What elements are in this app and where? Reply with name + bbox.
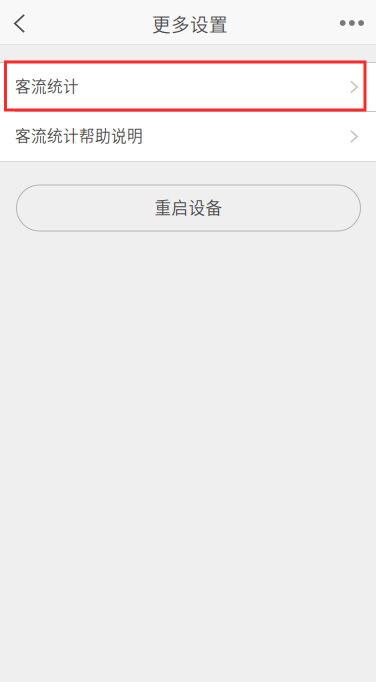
button[interactable]: Back	[0, 0, 37, 44]
staticText: 客流统计帮助说明	[15, 124, 143, 146]
staticText: 更多设置	[152, 10, 228, 37]
button[interactable]: 客流统计	[0, 63, 376, 111]
button[interactable]: 重启设备	[16, 185, 360, 231]
button[interactable]: 客流统计帮助说明	[0, 112, 376, 161]
staticText: 客流统计	[15, 74, 79, 97]
staticText: 重启设备	[154, 195, 222, 219]
button[interactable]: More options	[328, 0, 376, 44]
